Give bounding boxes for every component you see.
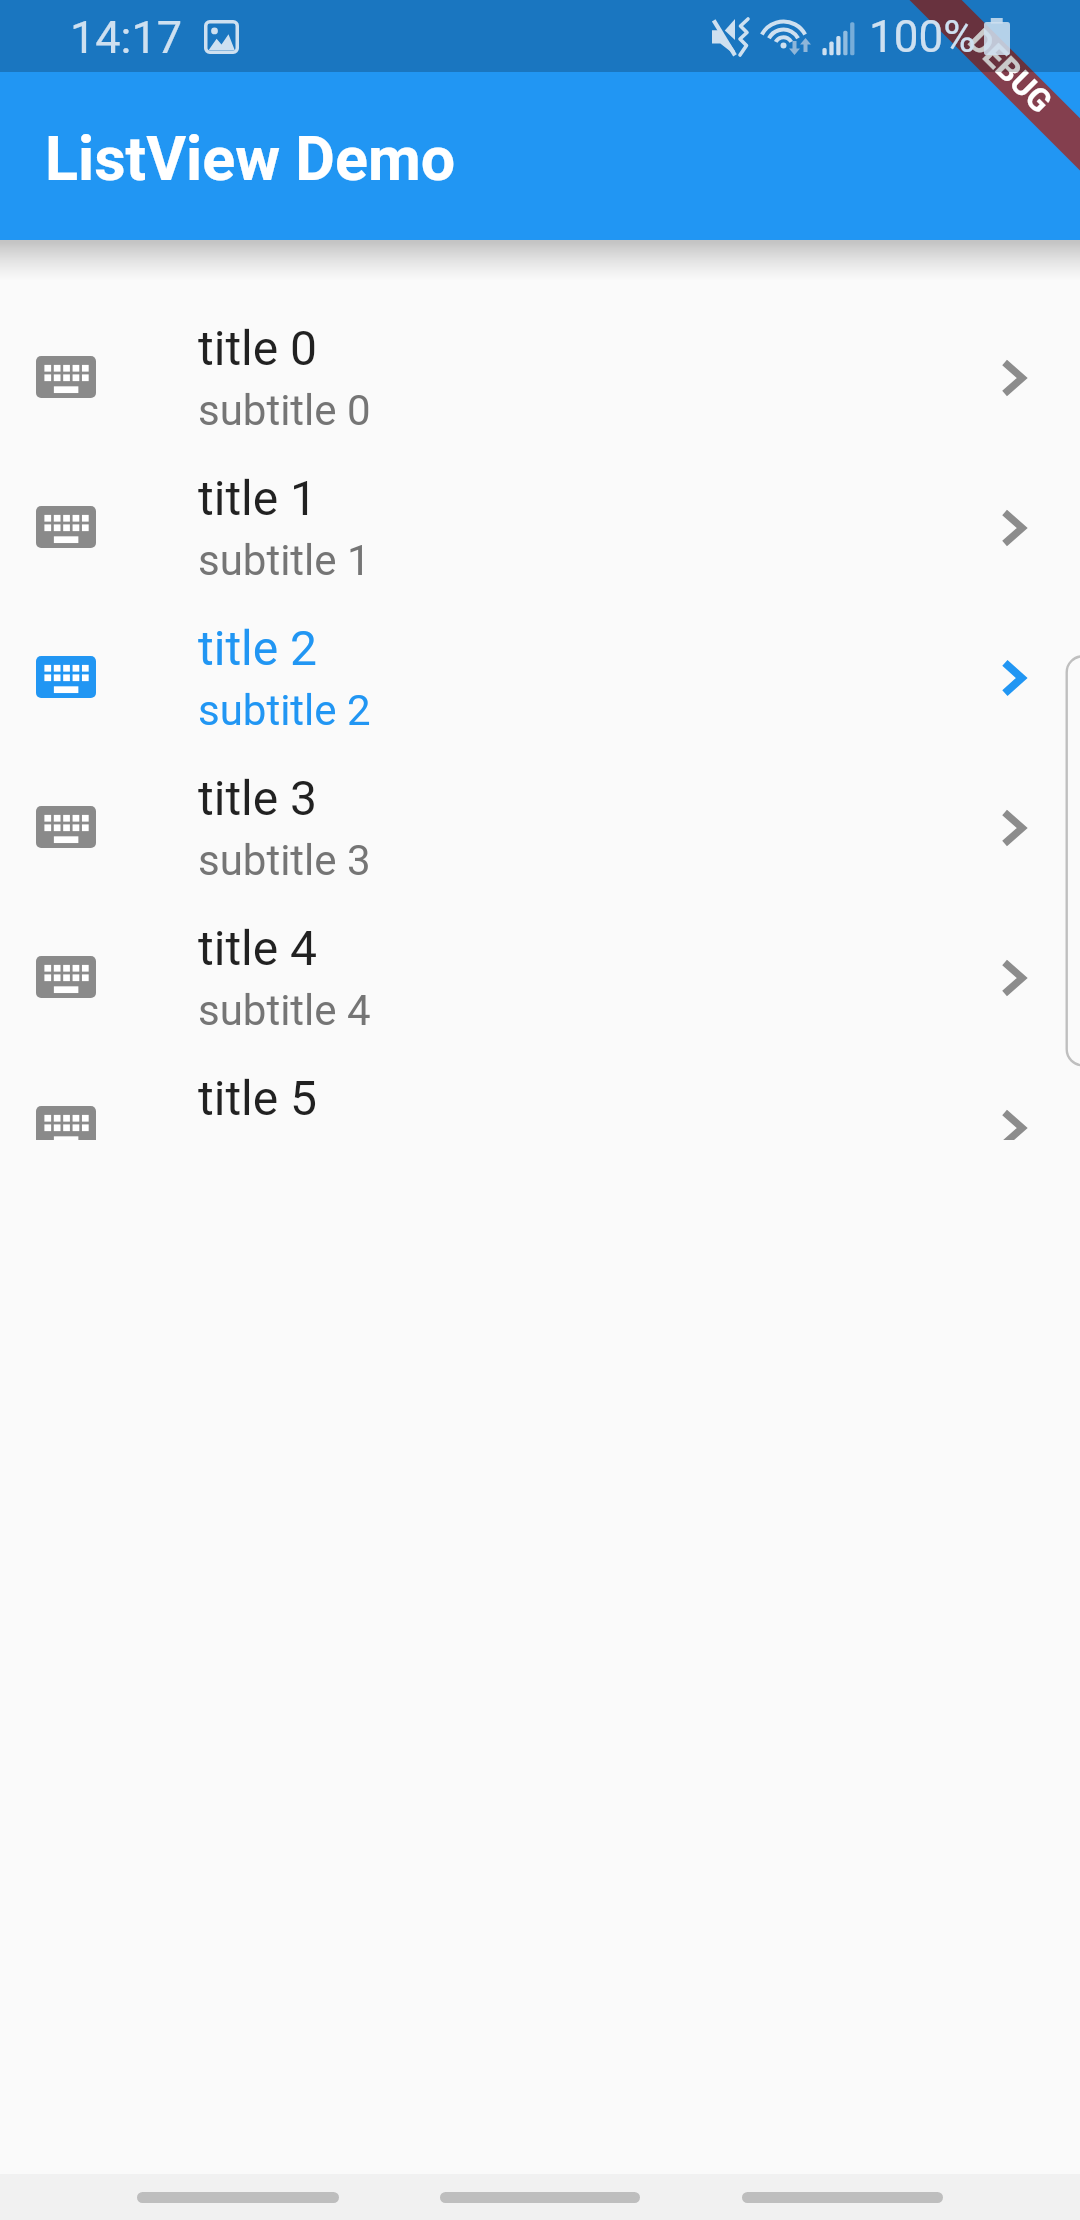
button[interactable]: Home (440, 2192, 640, 2203)
other: Open item (1001, 958, 1028, 998)
staticText: subtitle 0 (198, 386, 371, 435)
staticText: subtitle 2 (198, 686, 371, 735)
button[interactable]: title 4 (0, 902, 1080, 1052)
staticText: title 2 (198, 620, 318, 676)
button[interactable]: title 1 (0, 452, 1080, 602)
staticText: title 0 (198, 320, 318, 376)
button[interactable]: ListView Demo (0, 0, 1080, 240)
other: Open item (1001, 1108, 1028, 1140)
staticText: 14:17 (70, 11, 183, 64)
button[interactable]: title 5 (0, 1052, 1080, 1140)
button[interactable]: title 3 (0, 752, 1080, 902)
staticText: subtitle 4 (198, 986, 371, 1035)
staticText: title 5 (198, 1070, 318, 1126)
staticText: subtitle 3 (198, 836, 371, 885)
button[interactable]: Recent apps (742, 2192, 943, 2203)
other: Open item (1001, 508, 1028, 548)
button[interactable]: title 0 (0, 302, 1080, 452)
staticText: title 4 (198, 920, 318, 976)
staticText: title 1 (198, 470, 318, 526)
other: Open item (1001, 808, 1028, 848)
staticText: title 3 (198, 770, 318, 826)
button[interactable]: Back (137, 2192, 339, 2203)
staticText: 100% (869, 11, 976, 63)
other: Open item (1001, 358, 1028, 398)
staticText: ListView Demo (45, 123, 456, 194)
other: Open item (1001, 658, 1028, 698)
staticText: DEBUG (960, 21, 1060, 121)
button[interactable]: title 2 (0, 602, 1080, 752)
staticText: subtitle 1 (198, 536, 371, 585)
